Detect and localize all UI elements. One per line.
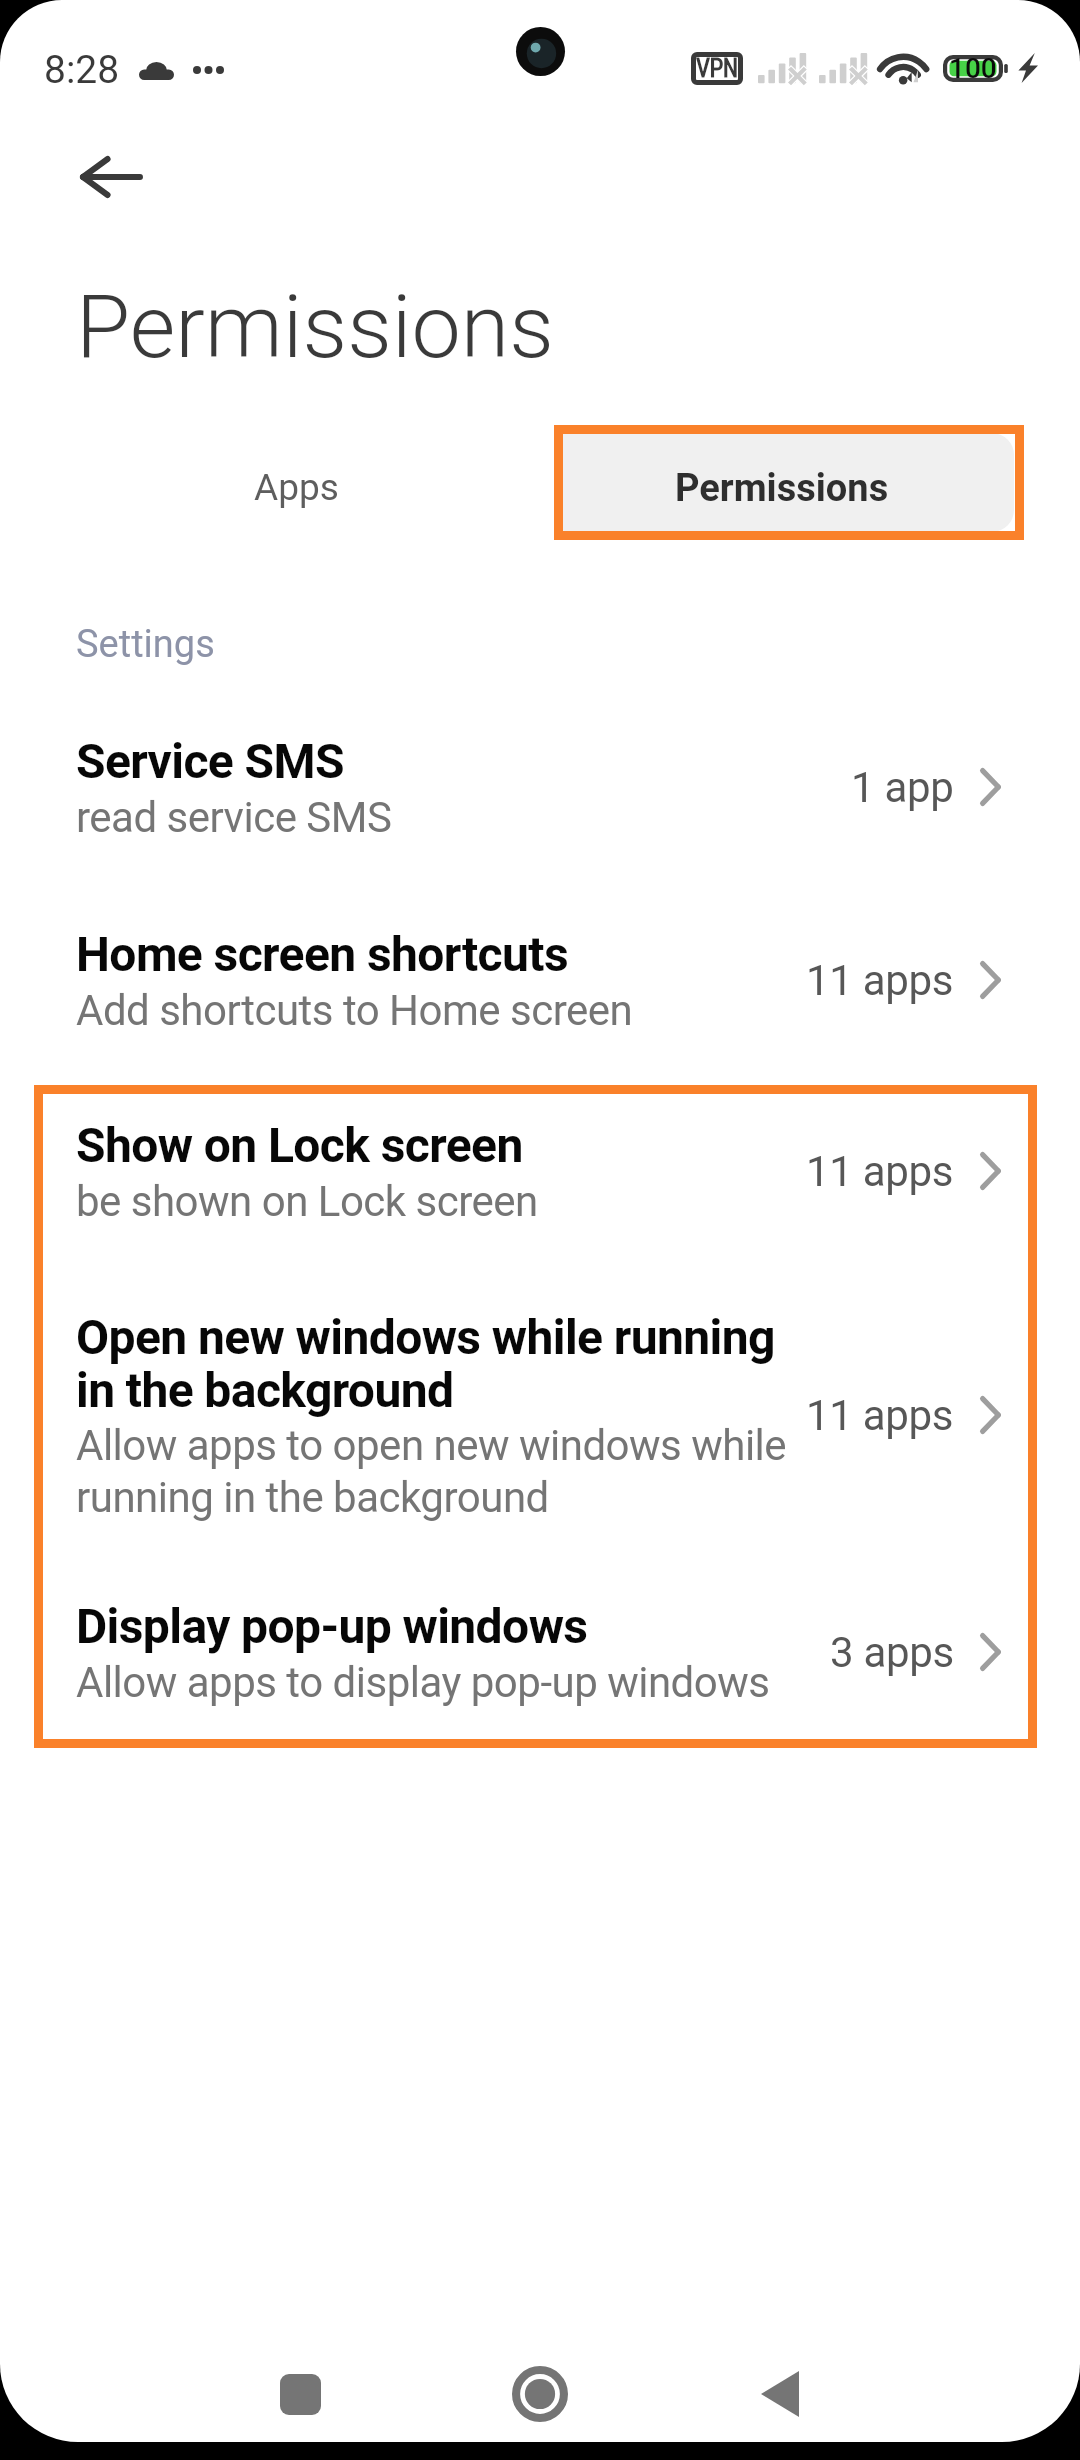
staticText: VPN <box>696 54 738 83</box>
button[interactable]: Home <box>420 2329 660 2442</box>
staticText: Add shortcuts to Home screen <box>76 986 811 1035</box>
staticText: Allow apps to open new windows while run… <box>76 1421 811 1522</box>
staticText: Service SMS <box>76 733 816 789</box>
button[interactable]: Show on Lock screen <box>0 1087 1080 1254</box>
staticText: Show on Lock screen <box>76 1117 816 1173</box>
staticText: be shown on Lock screen <box>76 1177 811 1226</box>
staticText: read service SMS <box>76 793 811 842</box>
staticText: Display pop-up windows <box>76 1598 816 1654</box>
button[interactable]: Apps <box>61 430 531 545</box>
staticText: 100 <box>949 52 997 85</box>
staticText: Allow apps to display pop-up windows <box>76 1658 811 1707</box>
button[interactable]: Back <box>660 2329 900 2442</box>
button[interactable]: Permissions <box>554 425 1024 540</box>
staticText: Open new windows while running in the ba… <box>76 1309 816 1419</box>
staticText: 8:28 <box>44 47 120 93</box>
button[interactable]: Home screen shortcuts <box>0 896 1080 1063</box>
staticText: 11 apps <box>806 956 954 1005</box>
button[interactable]: Open new windows while running in the ba… <box>0 1279 1080 1550</box>
staticText: Home screen shortcuts <box>76 926 816 982</box>
staticText: 11 apps <box>806 1391 954 1440</box>
staticText: Permissions <box>76 275 554 378</box>
staticText: 1 app <box>851 763 954 812</box>
staticText: 3 apps <box>830 1628 954 1677</box>
staticText: Permissions <box>675 466 889 511</box>
staticText: Settings <box>76 622 215 667</box>
button[interactable]: Display pop-up windows <box>0 1568 1080 1735</box>
button[interactable]: Recent apps <box>180 2329 420 2442</box>
staticText: Apps <box>254 466 339 509</box>
button[interactable]: Service SMS <box>0 703 1080 870</box>
button[interactable]: Back <box>44 142 176 212</box>
staticText: 11 apps <box>806 1147 954 1196</box>
